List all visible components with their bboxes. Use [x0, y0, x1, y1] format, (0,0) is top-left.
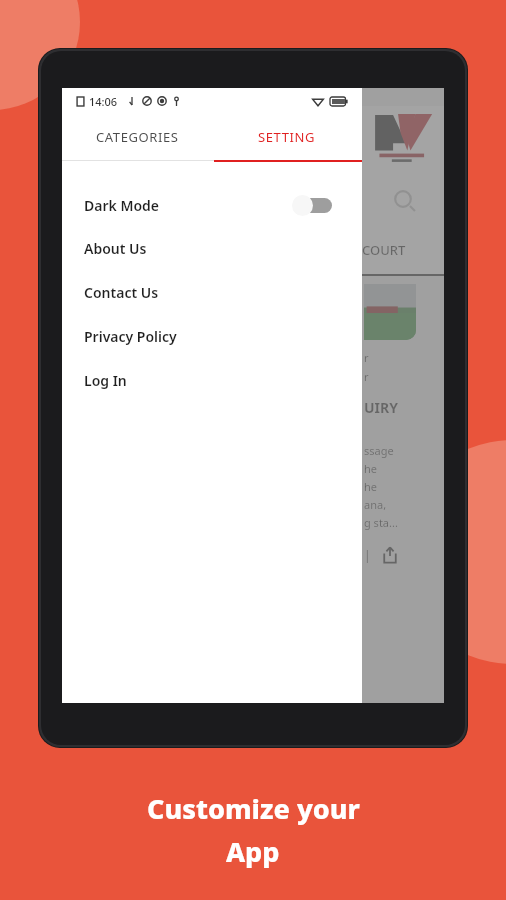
staticText: he	[364, 479, 378, 494]
staticText: UIRY	[364, 398, 398, 417]
button[interactable]: Privacy Policy	[62, 314, 362, 358]
staticText: CATEGORIES	[96, 128, 179, 146]
staticText: Customize your	[147, 790, 360, 827]
button[interactable]: Contact Us	[62, 270, 362, 314]
button[interactable]: Log In	[62, 358, 362, 402]
staticText: Contact Us	[84, 283, 159, 302]
button[interactable]: CATEGORIES	[62, 114, 212, 160]
staticText: Dark Mode	[84, 196, 159, 215]
staticText: 14:06	[89, 94, 118, 109]
staticText: App	[226, 833, 280, 870]
staticText: About Us	[84, 239, 147, 258]
button[interactable]: Dark Mode	[62, 184, 362, 226]
staticText: Log In	[84, 371, 127, 390]
staticText: |	[364, 547, 371, 563]
staticText: r	[364, 369, 369, 384]
staticText: g sta...	[364, 515, 398, 530]
staticText: SETTING	[258, 128, 316, 146]
staticText: he	[364, 461, 378, 476]
button[interactable]: SETTING	[212, 114, 362, 160]
button[interactable]: About Us	[62, 226, 362, 270]
staticText: Privacy Policy	[84, 327, 177, 346]
staticText: ana,	[364, 497, 387, 512]
staticText: ssage	[364, 443, 394, 458]
staticText: COURT	[362, 241, 406, 259]
staticText: r	[364, 350, 369, 365]
